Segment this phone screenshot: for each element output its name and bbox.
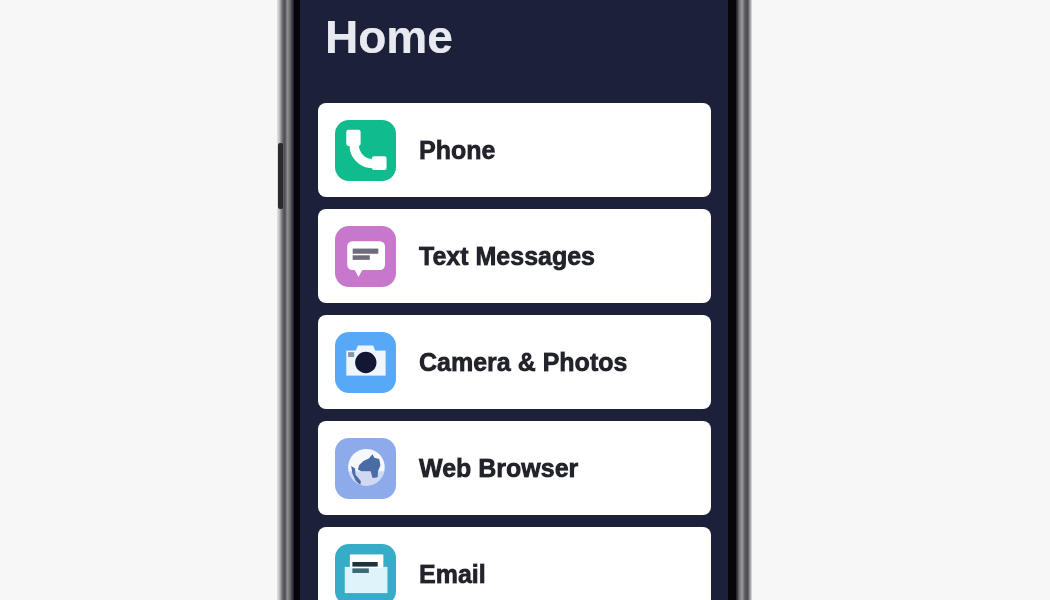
staticText: Phone: [419, 136, 496, 164]
staticText: Email: [419, 560, 486, 588]
other: Text Messages: [335, 226, 396, 287]
staticText: Home: [325, 11, 453, 62]
staticText: Web Browser: [419, 454, 579, 482]
button[interactable]: Phone: [318, 103, 711, 197]
other: Email: [335, 544, 396, 600]
button[interactable]: Text Messages: [318, 209, 711, 303]
staticText: Text Messages: [419, 242, 596, 270]
button[interactable]: Email: [318, 527, 711, 600]
button[interactable]: Camera & Photos: [318, 315, 711, 409]
staticText: Camera & Photos: [419, 348, 628, 376]
button[interactable]: Web Browser: [318, 421, 711, 515]
other: Camera & Photos: [335, 332, 396, 393]
other: Phone: [335, 120, 396, 181]
other: Web Browser: [335, 438, 396, 499]
